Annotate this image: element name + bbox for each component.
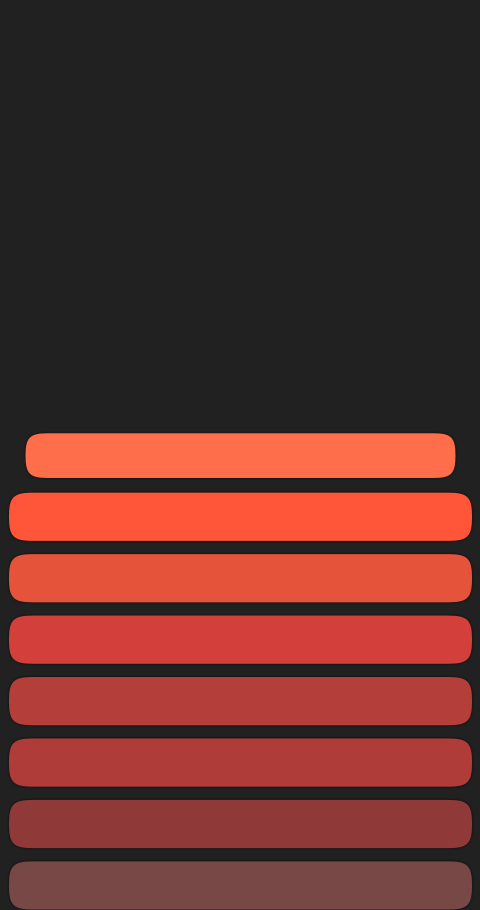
button[interactable]: Card 6	[9, 738, 472, 787]
button[interactable]: Card 1	[25, 433, 455, 478]
button[interactable]: Card 4	[9, 615, 472, 664]
button[interactable]: Card 7	[9, 800, 472, 848]
button[interactable]: Card 2	[9, 493, 472, 541]
button[interactable]: Card 8	[9, 861, 472, 910]
button[interactable]: Card 3	[9, 554, 472, 602]
button[interactable]: Card 5	[9, 677, 472, 725]
